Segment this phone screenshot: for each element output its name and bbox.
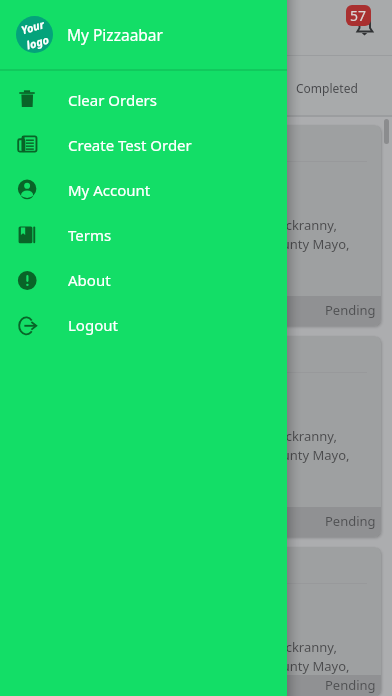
staticText: Pending bbox=[325, 512, 376, 530]
staticText: Your bbox=[19, 16, 46, 37]
staticText: logo bbox=[25, 32, 51, 52]
button[interactable]: Address: Ballinrobe Road, Main Street, K… bbox=[11, 547, 381, 696]
staticText: My Account bbox=[68, 180, 151, 200]
staticText: 57 bbox=[350, 6, 367, 25]
staticText: Completed bbox=[296, 80, 358, 96]
staticText: My Pizzaabar bbox=[67, 24, 163, 45]
staticText: Westport Quay Village, Westport Town, Co… bbox=[25, 446, 350, 464]
button[interactable]: Active bbox=[0, 56, 130, 115]
button[interactable]: Clear Orders bbox=[0, 77, 287, 122]
button[interactable]: Logout bbox=[0, 302, 287, 347]
button[interactable]: Address: Ballinrobe Road, Main Street, K… bbox=[11, 125, 381, 326]
staticText: About bbox=[68, 270, 111, 290]
staticText: Address: Ballinrobe Road, Main Street, K… bbox=[25, 216, 337, 234]
staticText: Logout bbox=[68, 315, 118, 335]
button[interactable]: About bbox=[0, 257, 287, 302]
button[interactable]: Accepted bbox=[130, 56, 261, 115]
staticText: Address: Ballinrobe Road, Main Street, K… bbox=[25, 638, 337, 656]
button[interactable]: Completed bbox=[261, 56, 392, 115]
button[interactable]: Your bbox=[0, 0, 287, 69]
staticText: Pending bbox=[325, 301, 376, 319]
staticText: Address: Ballinrobe Road, Main Street, K… bbox=[25, 427, 337, 445]
staticText: Clear Orders bbox=[68, 90, 157, 110]
button[interactable]: Terms bbox=[0, 212, 287, 257]
button[interactable]: Create Test Order bbox=[0, 122, 287, 167]
staticText: Create Test Order bbox=[68, 135, 192, 155]
button[interactable]: Address: Ballinrobe Road, Main Street, K… bbox=[11, 336, 381, 537]
button[interactable]: Notifications bbox=[345, 2, 381, 40]
button[interactable]: My Account bbox=[0, 167, 287, 212]
staticText: Westport Quay Village, Westport Town, Co… bbox=[25, 235, 350, 253]
staticText: Pending bbox=[325, 676, 376, 694]
staticText: Westport Quay Village, Westport Town, Co… bbox=[25, 657, 350, 675]
staticText: Active bbox=[48, 80, 82, 96]
staticText: Terms bbox=[68, 225, 112, 245]
